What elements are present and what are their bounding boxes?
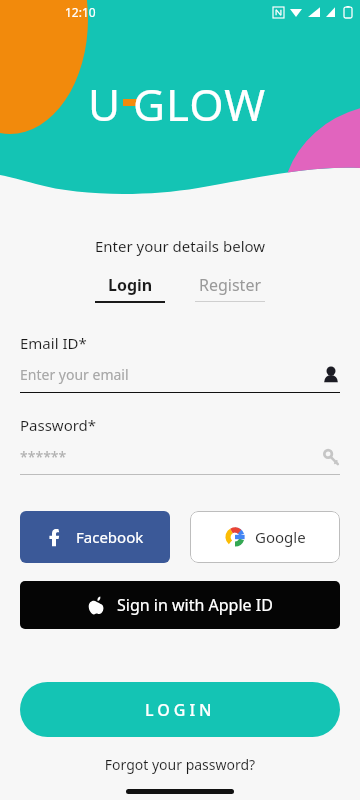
button[interactable]: Sign in with Apple ID	[20, 581, 340, 629]
staticText: ******	[20, 447, 322, 466]
staticText: Google	[255, 527, 306, 547]
staticText: 12:10	[65, 4, 96, 20]
button[interactable]: ******	[20, 447, 340, 466]
other: Show password	[322, 448, 340, 466]
button[interactable]: Forgot your password?	[0, 755, 360, 774]
staticText: Sign in with Apple ID	[117, 594, 273, 616]
staticText: Register	[199, 274, 262, 296]
staticText: Login	[108, 274, 153, 296]
staticText: LOGIN	[145, 699, 216, 721]
staticText: Password*	[20, 415, 97, 435]
staticText: Email ID*	[20, 333, 87, 353]
button[interactable]: Login	[91, 274, 169, 303]
button[interactable]: Enter your email	[20, 365, 340, 384]
staticText: Enter your details below	[0, 236, 360, 256]
button[interactable]: Register	[191, 274, 269, 302]
button[interactable]: Google	[190, 511, 340, 563]
staticText: Facebook	[76, 527, 144, 547]
button[interactable]: LOGIN	[20, 682, 340, 737]
staticText: GLOW	[133, 74, 267, 134]
button[interactable]: Facebook	[20, 511, 170, 563]
other: Account	[322, 366, 340, 384]
staticText: U	[88, 74, 121, 134]
staticText: Enter your email	[20, 365, 322, 384]
